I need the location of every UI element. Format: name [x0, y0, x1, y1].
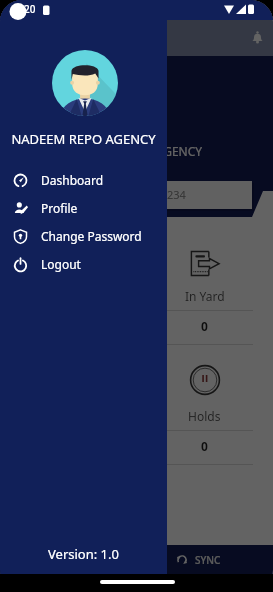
staticText: Dashboard	[41, 172, 104, 188]
button[interactable]: Notifications	[244, 24, 270, 50]
staticText: 0	[201, 318, 208, 334]
staticText: 234	[167, 187, 186, 202]
staticText: In Yard	[185, 288, 225, 304]
button[interactable]: Dashboard	[0, 166, 167, 194]
staticText: Version: 1.0	[0, 545, 167, 563]
staticText: Logout	[41, 256, 81, 272]
button[interactable]: Change Password	[0, 222, 167, 250]
button[interactable]: Repossessed	[0, 237, 136, 345]
staticText: 0	[201, 438, 208, 454]
button[interactable]: Profile	[0, 194, 167, 222]
button[interactable]: In Yard	[136, 237, 273, 345]
button[interactable]: Holds	[136, 351, 273, 465]
button[interactable]: SYNC	[176, 550, 221, 570]
button[interactable]: Logout	[0, 250, 167, 278]
staticText: Change Password	[41, 228, 142, 244]
staticText: 20	[24, 2, 36, 16]
staticText: Profile	[41, 200, 78, 216]
staticText: Holds	[188, 408, 221, 424]
staticText: NADEEM REPO AGENCY	[0, 130, 167, 148]
staticText: NADEEM REPO AGENCY	[0, 143, 272, 159]
button[interactable]: 234	[21, 181, 252, 209]
staticText: SYNC	[195, 553, 221, 567]
